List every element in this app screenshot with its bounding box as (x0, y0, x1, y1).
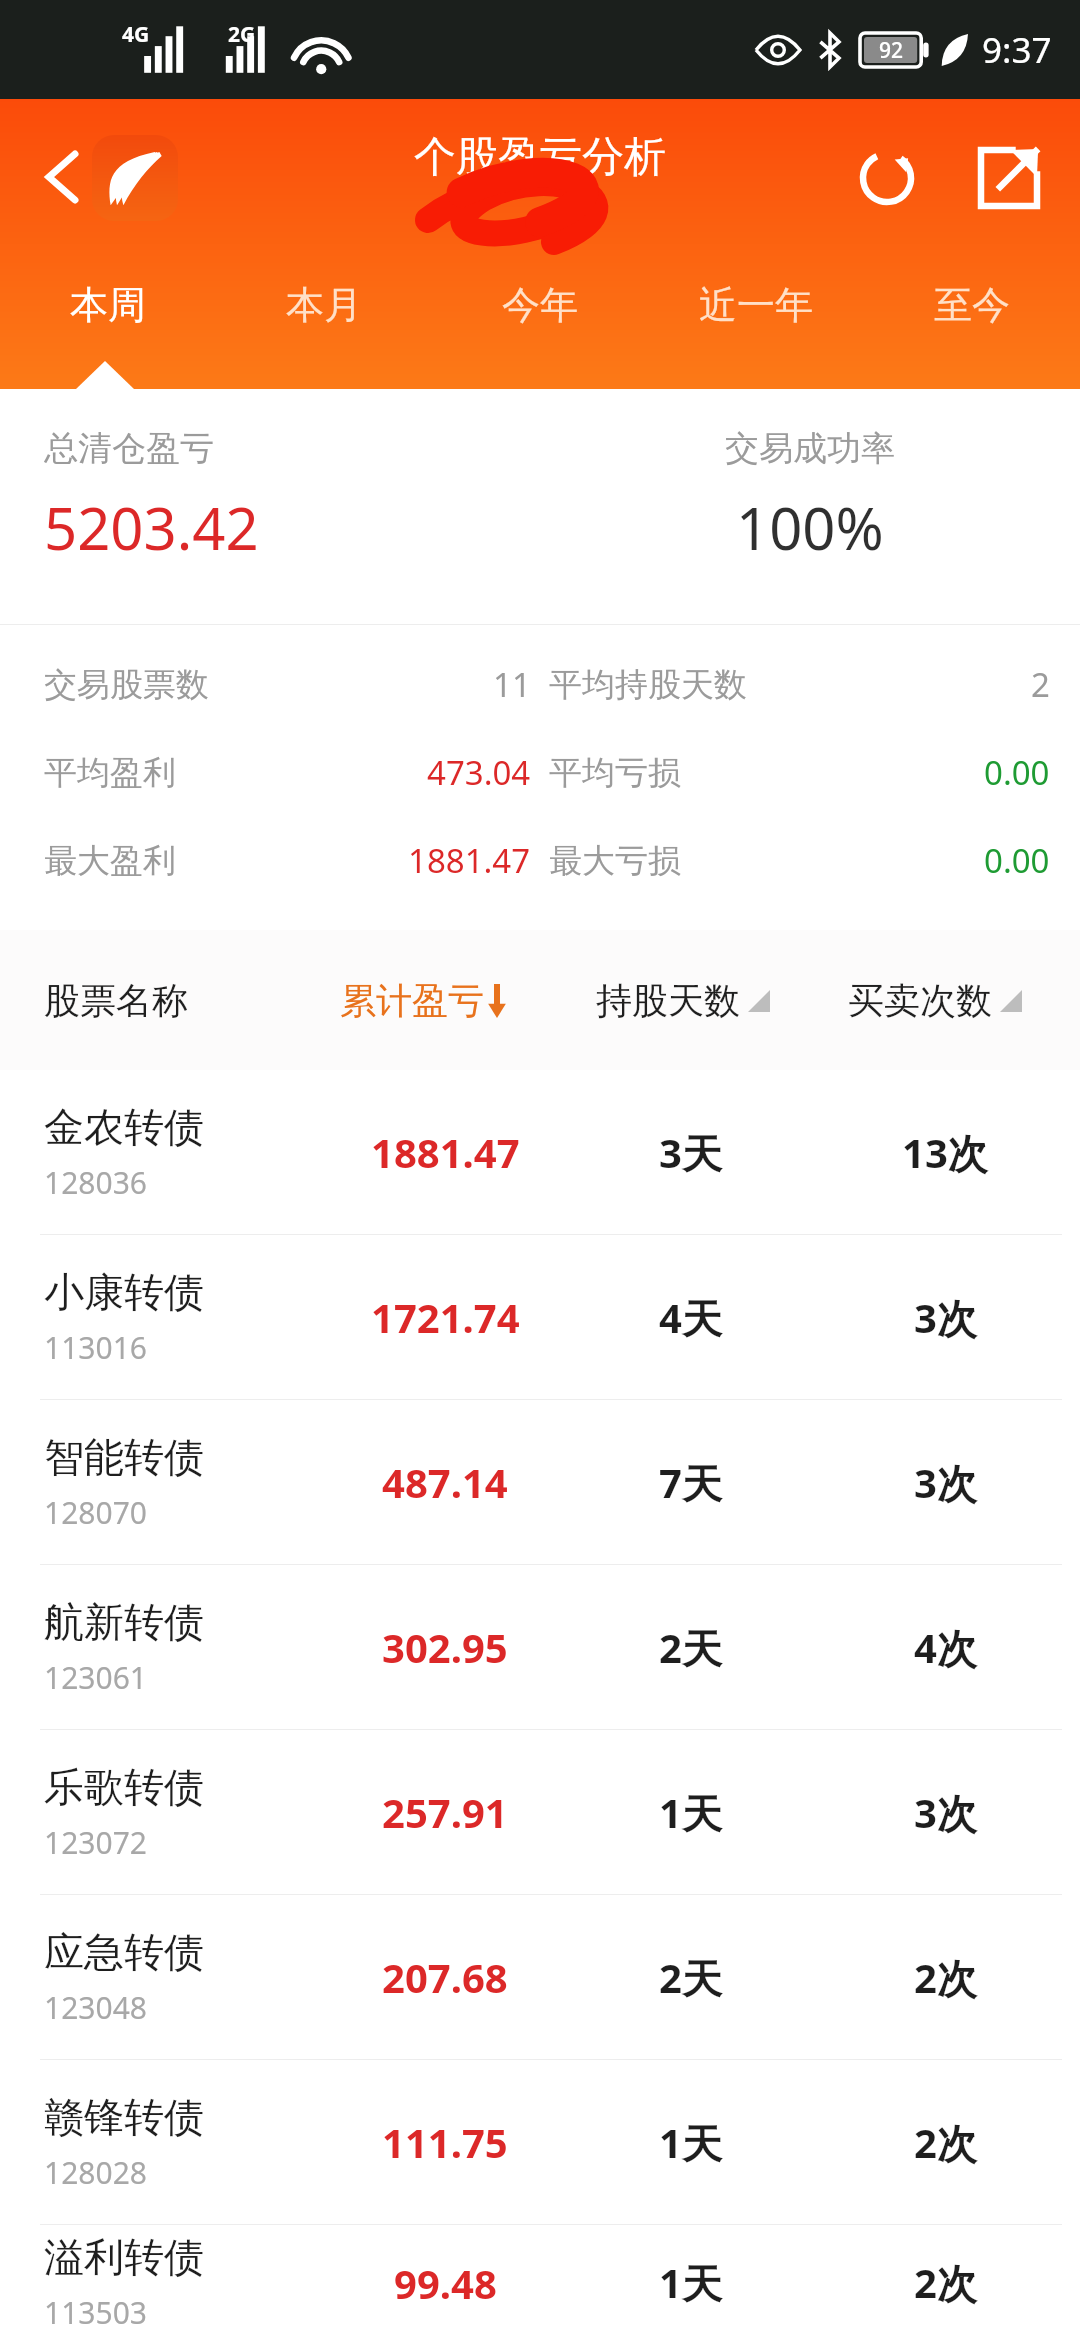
staticText: 持股天数 (596, 978, 740, 1023)
staticText: 股票名称 (44, 978, 188, 1023)
staticText: 2天 (659, 1950, 722, 2005)
button[interactable]: 应急转债 (0, 1895, 1080, 2059)
staticText: 0.00 (984, 838, 1050, 883)
button[interactable]: 金农转债 (0, 1070, 1080, 1234)
staticText: 11 (493, 662, 531, 707)
staticText: 近一年 (699, 281, 813, 329)
staticText: 平均盈利 (44, 752, 176, 794)
staticText: 至今 (934, 281, 1010, 329)
staticText: 溢利转债 (44, 2232, 204, 2282)
staticText: 487.14 (382, 1455, 508, 1509)
button[interactable]: 小康转债 (0, 1235, 1080, 1399)
button[interactable]: 累计盈亏 (340, 978, 510, 1023)
staticText: 7天 (659, 1455, 722, 1510)
staticText: 最大盈利 (44, 840, 176, 882)
staticText: 111.75 (382, 2115, 508, 2169)
staticText: 交易成功率 (725, 427, 895, 470)
staticText: 3次 (914, 1785, 977, 1840)
staticText: 本周 (70, 281, 146, 329)
staticText: 92 (879, 36, 904, 65)
staticText: 99.48 (394, 2256, 497, 2310)
staticText: 1天 (659, 2115, 722, 2170)
staticText: 2 (1031, 662, 1050, 707)
button[interactable]: 本周 (0, 269, 216, 389)
staticText: 4次 (914, 1620, 977, 1675)
button[interactable]: 乐歌转债 (0, 1730, 1080, 1894)
staticText: 平均持股天数 (549, 664, 747, 706)
staticText: 1881.47 (408, 838, 531, 883)
staticText: 2次 (914, 2115, 977, 2170)
button[interactable]: 今年 (432, 269, 648, 389)
staticText: 13次 (902, 1125, 988, 1180)
button[interactable]: Back (22, 137, 102, 217)
staticText: 123061 (44, 1657, 147, 1698)
button[interactable]: 持股天数 (596, 978, 770, 1023)
button[interactable]: 智能转债 (0, 1400, 1080, 1564)
button[interactable]: 买卖次数 (848, 978, 1022, 1023)
button[interactable]: App logo (92, 135, 178, 221)
staticText: 累计盈亏 (340, 978, 484, 1023)
button[interactable]: 赣锋转债 (0, 2060, 1080, 2224)
staticText: 2天 (659, 1620, 722, 1675)
staticText: 100% (736, 488, 884, 567)
staticText: 3天 (659, 1125, 722, 1180)
staticText: 应急转债 (44, 1927, 204, 1977)
staticText: 9:37 (982, 26, 1052, 74)
staticText: 最大亏损 (549, 840, 681, 882)
staticText: 113016 (44, 1327, 147, 1368)
staticText: 302.95 (382, 1620, 508, 1674)
staticText: 平均亏损 (549, 752, 681, 794)
staticText: 123072 (44, 1822, 147, 1863)
button[interactable]: 航新转债 (0, 1565, 1080, 1729)
staticText: 4天 (659, 1290, 722, 1345)
staticText: 乐歌转债 (44, 1762, 204, 1812)
staticText: 0.00 (984, 750, 1050, 795)
staticText: 2G (228, 20, 256, 49)
staticText: 3次 (914, 1455, 977, 1510)
staticText: 个股盈亏分析 (414, 131, 666, 184)
button[interactable]: 近一年 (648, 269, 864, 389)
staticText: 1881.47 (371, 1125, 520, 1179)
staticText: 128070 (44, 1492, 147, 1533)
staticText: 金农转债 (44, 1102, 204, 1152)
staticText: 航新转债 (44, 1597, 204, 1647)
staticText: 本月 (286, 281, 362, 329)
staticText: 257.91 (382, 1785, 508, 1839)
button[interactable]: 溢利转债 (0, 2225, 1080, 2340)
staticText: 128036 (44, 1162, 147, 1203)
staticText: 2次 (914, 1950, 977, 2005)
staticText: 3次 (914, 1290, 977, 1345)
staticText: 交易股票数 (44, 664, 209, 706)
staticText: 赣锋转债 (44, 2092, 204, 2142)
staticText: 今年 (502, 281, 578, 329)
staticText: 1721.74 (371, 1290, 520, 1344)
staticText: 总清仓盈亏 (44, 427, 214, 470)
staticText: 207.68 (382, 1950, 508, 2004)
staticText: 小康转债 (44, 1267, 204, 1317)
button[interactable]: Share (966, 135, 1052, 221)
button[interactable]: 至今 (864, 269, 1080, 389)
staticText: 123048 (44, 1987, 147, 2028)
staticText: 买卖次数 (848, 978, 992, 1023)
button[interactable]: Refresh (844, 135, 930, 221)
staticText: 128028 (44, 2152, 147, 2193)
staticText: 4G (122, 20, 150, 49)
staticText: 1天 (659, 2255, 722, 2310)
staticText: 1天 (659, 1785, 722, 1840)
button[interactable]: 本月 (216, 269, 432, 389)
staticText: 113503 (44, 2292, 147, 2333)
staticText: 473.04 (427, 750, 531, 795)
staticText: 2次 (914, 2255, 977, 2310)
staticText: 5203.42 (44, 488, 259, 567)
staticText: 智能转债 (44, 1432, 204, 1482)
